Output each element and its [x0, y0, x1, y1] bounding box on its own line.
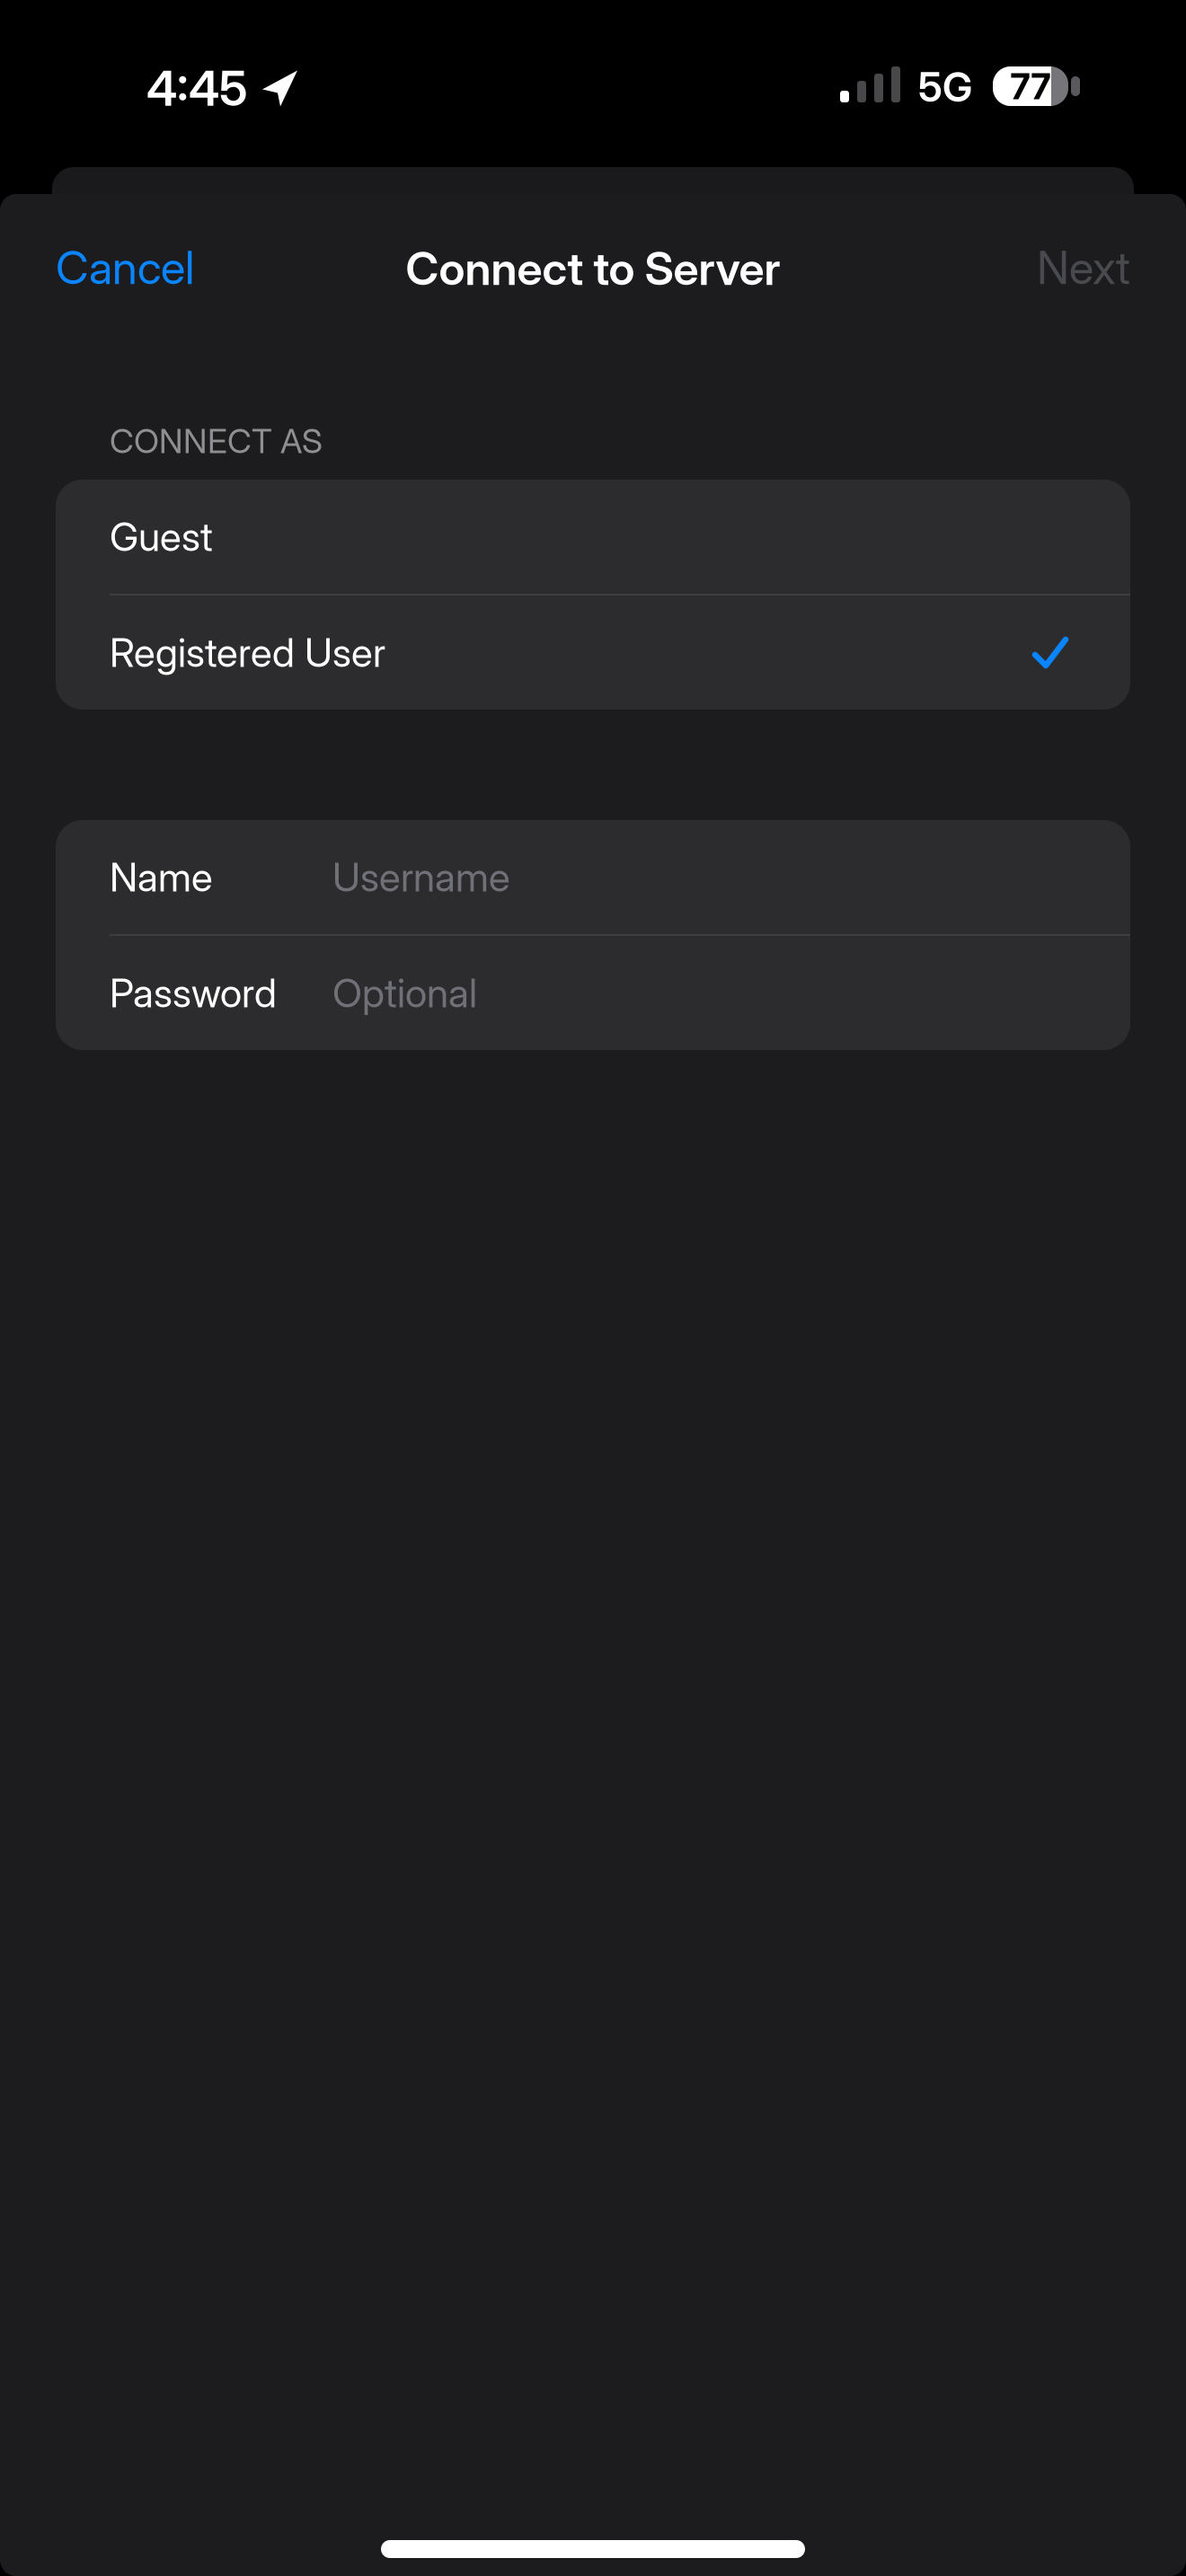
staticText: Cancel [56, 241, 194, 294]
button[interactable]: Next [1037, 241, 1130, 294]
button[interactable]: Cancel [56, 241, 194, 294]
staticText: Registered User [110, 629, 385, 676]
staticText: 4:45 [146, 60, 248, 117]
button[interactable]: Guest [56, 480, 1130, 594]
staticText: Guest [110, 513, 213, 560]
button[interactable]: Name [56, 820, 1130, 934]
button[interactable]: Registered User [56, 595, 1130, 710]
button[interactable]: Password [56, 936, 1130, 1050]
staticText: 77 [1010, 65, 1051, 107]
staticText: Name [110, 854, 213, 900]
staticText: Next [1037, 241, 1130, 294]
staticText: 5G [918, 63, 972, 111]
staticText: Username [332, 854, 510, 900]
staticText: Optional [332, 970, 477, 1016]
staticText: Connect to Server [406, 242, 780, 295]
staticText: Password [110, 970, 277, 1016]
staticText: CONNECT AS [110, 421, 323, 461]
